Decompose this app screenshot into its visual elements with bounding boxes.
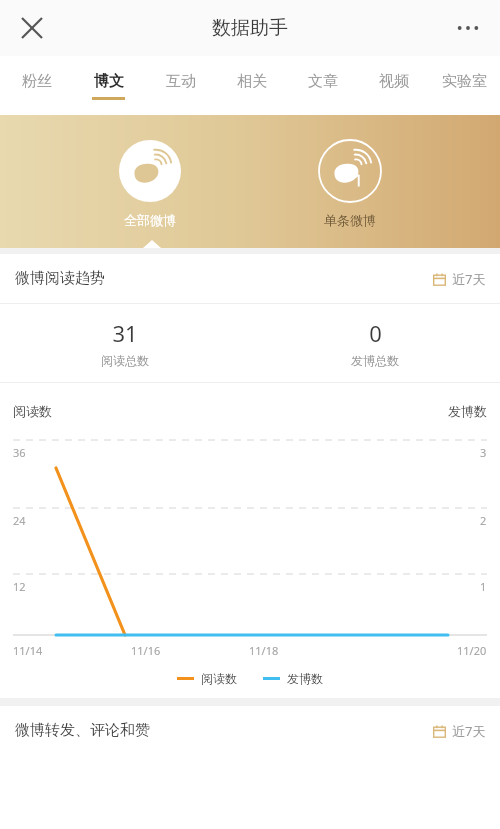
- button[interactable]: 31: [0, 304, 250, 382]
- button[interactable]: 近7天: [433, 722, 486, 740]
- staticText: 粉丝: [22, 72, 52, 91]
- staticText: 发博数: [448, 403, 487, 419]
- button[interactable]: 视频: [358, 56, 429, 115]
- staticText: 11/18: [249, 643, 279, 658]
- staticText: 1: [480, 579, 487, 594]
- staticText: 2: [480, 513, 487, 528]
- staticText: 微博转发、评论和赞: [15, 721, 150, 740]
- staticText: 12: [13, 579, 26, 594]
- staticText: 微博阅读趋势: [15, 269, 105, 288]
- button[interactable]: More options: [444, 4, 492, 52]
- button[interactable]: 单条微博: [250, 115, 450, 248]
- button[interactable]: 相关: [216, 56, 287, 115]
- staticText: 近7天: [452, 270, 486, 288]
- staticText: 数据助手: [212, 16, 288, 40]
- button[interactable]: 粉丝: [0, 56, 72, 115]
- staticText: 互动: [166, 72, 196, 91]
- staticText: 发博总数: [351, 353, 399, 368]
- staticText: 阅读总数: [101, 353, 149, 368]
- button[interactable]: 近7天: [433, 270, 486, 288]
- button[interactable]: 全部微博: [50, 115, 250, 248]
- button[interactable]: Close: [8, 4, 56, 52]
- staticText: 全部微博: [124, 212, 176, 228]
- button[interactable]: 博文: [72, 56, 144, 115]
- staticText: 31: [112, 318, 138, 348]
- staticText: 11/14: [13, 643, 43, 658]
- button[interactable]: 发博数: [263, 671, 323, 686]
- button[interactable]: 阅读数: [177, 671, 237, 686]
- staticText: 11/16: [131, 643, 161, 658]
- staticText: 近7天: [452, 722, 486, 740]
- staticText: 阅读数: [201, 671, 237, 686]
- button[interactable]: 互动: [144, 56, 216, 115]
- staticText: 36: [13, 445, 26, 460]
- staticText: 文章: [308, 72, 338, 91]
- staticText: 24: [13, 513, 26, 528]
- staticText: 11/20: [457, 643, 487, 658]
- staticText: 博文: [94, 72, 124, 91]
- staticText: 发博数: [287, 671, 323, 686]
- staticText: 相关: [237, 72, 267, 91]
- staticText: 阅读数: [13, 403, 52, 419]
- staticText: 实验室: [442, 72, 487, 91]
- staticText: 3: [480, 445, 487, 460]
- button[interactable]: 实验室: [429, 56, 500, 115]
- button[interactable]: 0: [250, 304, 500, 382]
- staticText: 视频: [379, 72, 409, 91]
- staticText: 单条微博: [324, 212, 376, 228]
- staticText: 0: [369, 318, 382, 348]
- button[interactable]: 文章: [287, 56, 358, 115]
